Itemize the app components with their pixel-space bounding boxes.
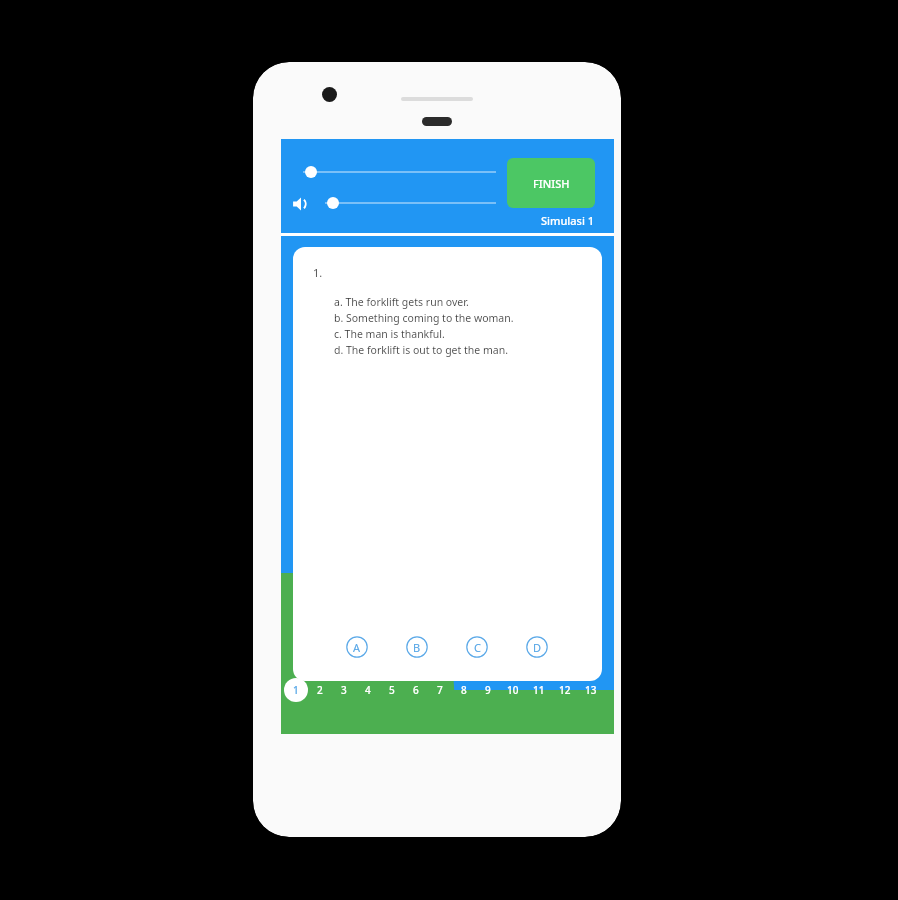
- button[interactable]: 12: [552, 678, 578, 702]
- button[interactable]: 8: [452, 678, 476, 702]
- button[interactable]: 10: [500, 678, 526, 702]
- staticText: 1.: [313, 265, 323, 280]
- staticText: B: [413, 640, 421, 655]
- staticText: 10: [507, 683, 519, 697]
- button[interactable]: [305, 166, 317, 178]
- staticText: 2: [317, 683, 323, 697]
- button[interactable]: 11: [526, 678, 552, 702]
- button[interactable]: 5: [380, 678, 404, 702]
- staticText: 3: [341, 683, 347, 697]
- button[interactable]: 13: [578, 678, 604, 702]
- staticText: 11: [533, 683, 545, 697]
- staticText: 12: [559, 683, 571, 697]
- staticText: 1: [293, 683, 299, 697]
- staticText: D: [533, 640, 542, 655]
- button[interactable]: C: [466, 636, 488, 658]
- staticText: C: [474, 640, 481, 655]
- staticText: 9: [485, 683, 491, 697]
- staticText: A: [353, 640, 361, 655]
- button[interactable]: 2: [308, 678, 332, 702]
- button[interactable]: Volume: [292, 195, 310, 213]
- button[interactable]: 3: [332, 678, 356, 702]
- button[interactable]: 1: [284, 678, 308, 702]
- staticText: Simulasi 1: [541, 213, 595, 228]
- button[interactable]: 7: [428, 678, 452, 702]
- button[interactable]: 4: [356, 678, 380, 702]
- button[interactable]: FINISH: [507, 158, 595, 208]
- staticText: d. The forklift is out to get the man.: [334, 343, 508, 357]
- staticText: 5: [389, 683, 395, 697]
- button[interactable]: [327, 197, 339, 209]
- staticText: 13: [585, 683, 597, 697]
- staticText: 8: [461, 683, 467, 697]
- staticText: 4: [365, 683, 371, 697]
- staticText: 6: [413, 683, 419, 697]
- button[interactable]: B: [406, 636, 428, 658]
- staticText: 7: [437, 683, 443, 697]
- staticText: c. The man is thankful.: [334, 327, 445, 341]
- staticText: a. The forklift gets run over.: [334, 295, 469, 309]
- button[interactable]: A: [346, 636, 368, 658]
- button[interactable]: 9: [476, 678, 500, 702]
- staticText: FINISH: [533, 176, 570, 191]
- button[interactable]: D: [526, 636, 548, 658]
- staticText: b. Something coming to the woman.: [334, 311, 514, 325]
- button[interactable]: 6: [404, 678, 428, 702]
